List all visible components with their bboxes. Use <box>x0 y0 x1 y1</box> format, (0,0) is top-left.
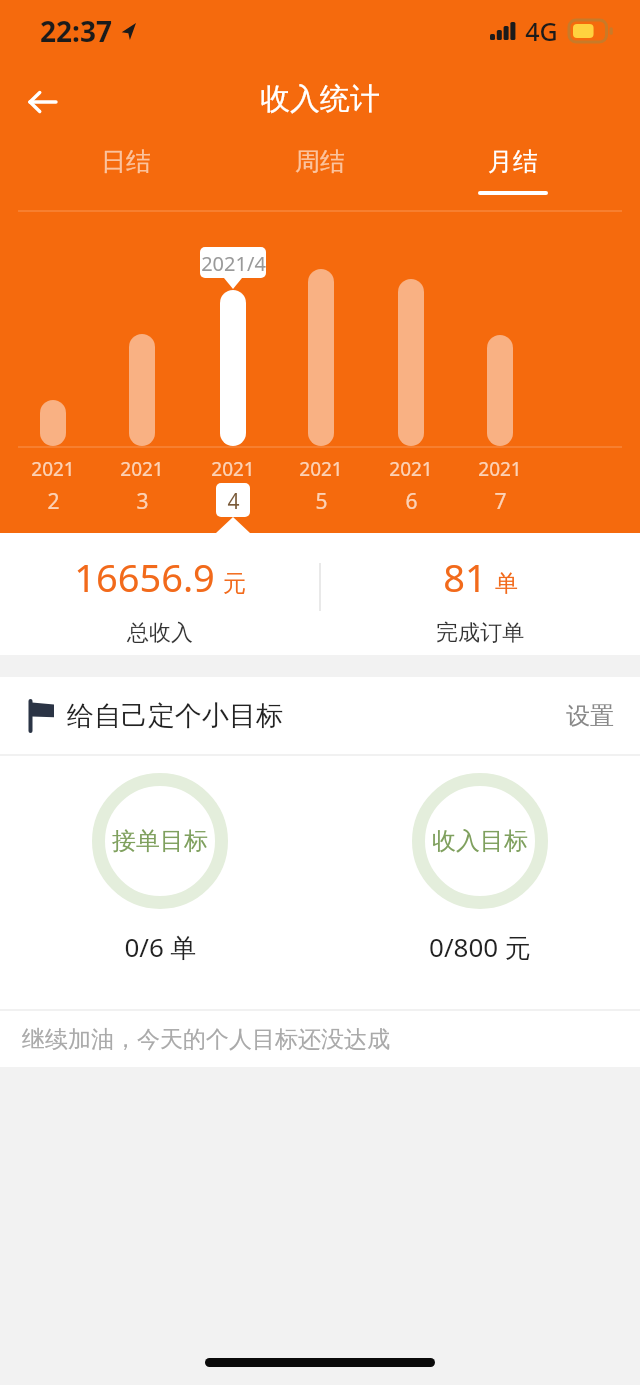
button[interactable]: 接单目标 <box>0 756 320 1010</box>
staticText: 81 <box>443 551 487 603</box>
staticText: 单 <box>495 569 518 598</box>
staticText: 0/6 单 <box>124 929 197 965</box>
staticText: 收入统计 <box>260 80 380 118</box>
staticText: 3 <box>136 487 149 516</box>
staticText: 设置 <box>566 701 614 731</box>
staticText: 元 <box>223 569 246 598</box>
staticText: 16656.9 <box>74 551 215 603</box>
staticText: 2021 <box>389 456 433 482</box>
staticText: 2021 <box>211 456 255 482</box>
staticText: 月结 <box>488 146 538 177</box>
button[interactable]: 月结 <box>455 140 571 196</box>
staticText: 7 <box>494 487 507 516</box>
staticText: 总收入 <box>127 619 193 647</box>
staticText: 2 <box>47 487 60 516</box>
button[interactable]: 给自己定个小目标 <box>0 677 640 755</box>
button[interactable]: Back <box>12 72 72 132</box>
staticText: 给自己定个小目标 <box>67 699 283 733</box>
staticText: 6 <box>405 487 418 516</box>
button[interactable]: 收入目标 <box>320 756 640 1010</box>
staticText: 2021 <box>120 456 164 482</box>
staticText: 日结 <box>101 146 151 177</box>
staticText: 收入目标 <box>432 826 528 856</box>
staticText: 22:37 <box>40 12 112 50</box>
staticText: 继续加油，今天的个人目标还没达成 <box>22 1025 390 1054</box>
staticText: 4G <box>525 14 558 48</box>
staticText: 2021/4 <box>201 250 266 277</box>
button[interactable]: 日结 <box>68 140 184 196</box>
button[interactable]: 设置 <box>556 693 624 739</box>
button[interactable]: 周结 <box>262 140 378 196</box>
staticText: 完成订单 <box>436 619 524 647</box>
staticText: 周结 <box>295 146 345 177</box>
staticText: 2021 <box>31 456 75 482</box>
staticText: 2021 <box>299 456 343 482</box>
staticText: 2021 <box>478 456 522 482</box>
staticText: 接单目标 <box>112 826 208 856</box>
button[interactable]: 16656.9 <box>0 533 320 655</box>
staticText: 0/800 元 <box>429 929 531 965</box>
staticText: 5 <box>315 487 328 516</box>
button[interactable]: 81 <box>320 533 640 655</box>
staticText: 4 <box>227 487 240 516</box>
